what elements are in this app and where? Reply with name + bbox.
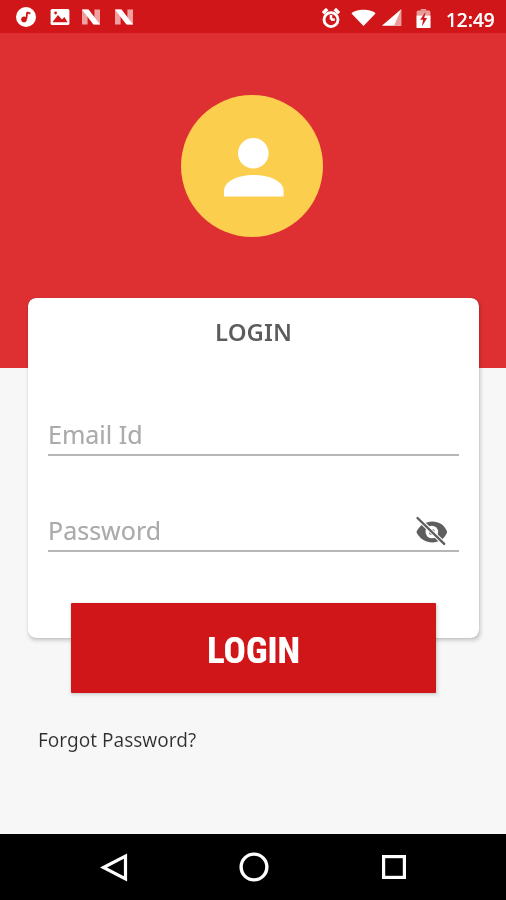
staticText: Forgot Password?: [38, 727, 197, 753]
button[interactable]: Home: [218, 834, 290, 900]
button[interactable]: Password: [48, 513, 459, 553]
button[interactable]: Email Id: [48, 417, 459, 457]
staticText: LOGIN: [207, 629, 301, 672]
staticText: 12:49: [446, 7, 495, 33]
button[interactable]: Back: [78, 834, 150, 900]
button[interactable]: Show password: [414, 513, 450, 549]
button[interactable]: Forgot Password?: [38, 727, 197, 753]
button[interactable]: Recents: [358, 834, 430, 900]
staticText: Password: [48, 513, 162, 547]
staticText: LOGIN: [28, 315, 479, 348]
button[interactable]: LOGIN: [71, 603, 436, 693]
staticText: Email Id: [48, 417, 143, 451]
